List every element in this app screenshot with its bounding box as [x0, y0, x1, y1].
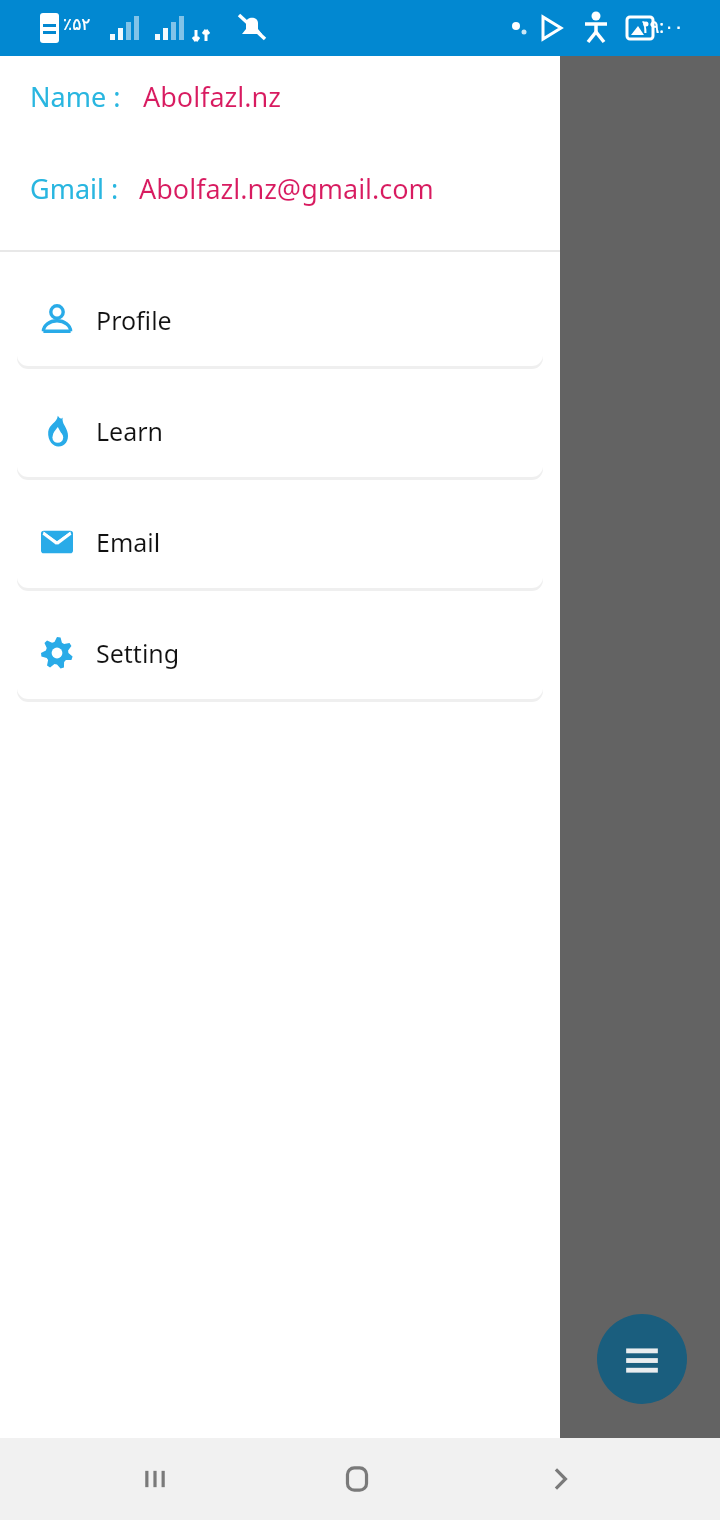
button[interactable]: Email: [17, 496, 543, 588]
staticText: Abolfazl.nz@gmail.com: [139, 170, 434, 207]
staticText: Name :: [30, 78, 121, 115]
staticText: Email: [96, 525, 161, 559]
button[interactable]: Home: [317, 1438, 397, 1520]
button[interactable]: Open menu: [597, 1314, 687, 1404]
button[interactable]: Recents: [115, 1438, 195, 1520]
button[interactable]: Learn: [17, 385, 543, 477]
staticText: ٪۵۲: [63, 14, 91, 34]
staticText: Abolfazl.nz: [143, 78, 281, 115]
staticText: Setting: [96, 636, 180, 670]
staticText: Gmail :: [30, 170, 119, 207]
button[interactable]: Back: [520, 1438, 600, 1520]
button[interactable]: Setting: [17, 607, 543, 699]
staticText: Learn: [96, 414, 164, 448]
button[interactable]: Profile: [17, 274, 543, 366]
staticText: ۱۹:۰۰: [640, 14, 684, 39]
staticText: Profile: [96, 303, 172, 337]
